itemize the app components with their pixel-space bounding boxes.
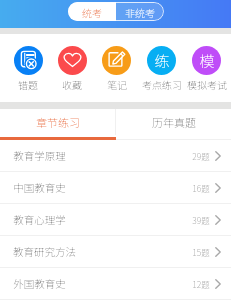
staticText: 历年真题	[152, 114, 196, 130]
button[interactable]: 模	[184, 46, 229, 91]
staticText: 15题	[192, 246, 210, 258]
staticText: 16题	[192, 182, 210, 194]
button[interactable]: 非统考	[116, 2, 164, 21]
staticText: 教育学原理	[13, 148, 66, 163]
staticText: 教育研究方法	[13, 244, 76, 259]
button[interactable]: 统考	[68, 2, 116, 21]
button[interactable]: 章节练习	[0, 109, 115, 135]
button[interactable]: 历年真题	[116, 109, 231, 135]
staticText: 外国教育史	[13, 276, 66, 291]
button[interactable]: 练	[139, 46, 184, 91]
staticText: 12题	[192, 278, 210, 290]
staticText: 中国教育史	[13, 180, 66, 195]
staticText: 模	[199, 50, 215, 72]
button[interactable]: 错题	[6, 46, 50, 91]
staticText: 模拟考试	[187, 77, 227, 91]
staticText: 考点练习	[142, 77, 182, 91]
staticText: 章节练习	[36, 114, 80, 130]
button[interactable]: 教育学原理	[0, 140, 231, 171]
button[interactable]: 教育心理学	[0, 204, 231, 235]
button[interactable]: 中国教育史	[0, 172, 231, 203]
staticText: 收藏	[62, 77, 82, 91]
staticText: 错题	[18, 77, 38, 91]
staticText: 统考	[82, 5, 102, 19]
staticText: 教育心理学	[13, 212, 66, 227]
staticText: 笔记	[107, 77, 127, 91]
button[interactable]: 收藏	[50, 46, 94, 91]
staticText: 练	[154, 50, 170, 72]
button[interactable]: 教育研究方法	[0, 236, 231, 267]
staticText: 29题	[192, 150, 210, 162]
button[interactable]: 外国教育史	[0, 268, 231, 299]
button[interactable]: 笔记	[94, 46, 139, 91]
staticText: 39题	[192, 214, 210, 226]
staticText: 非统考	[125, 5, 155, 19]
